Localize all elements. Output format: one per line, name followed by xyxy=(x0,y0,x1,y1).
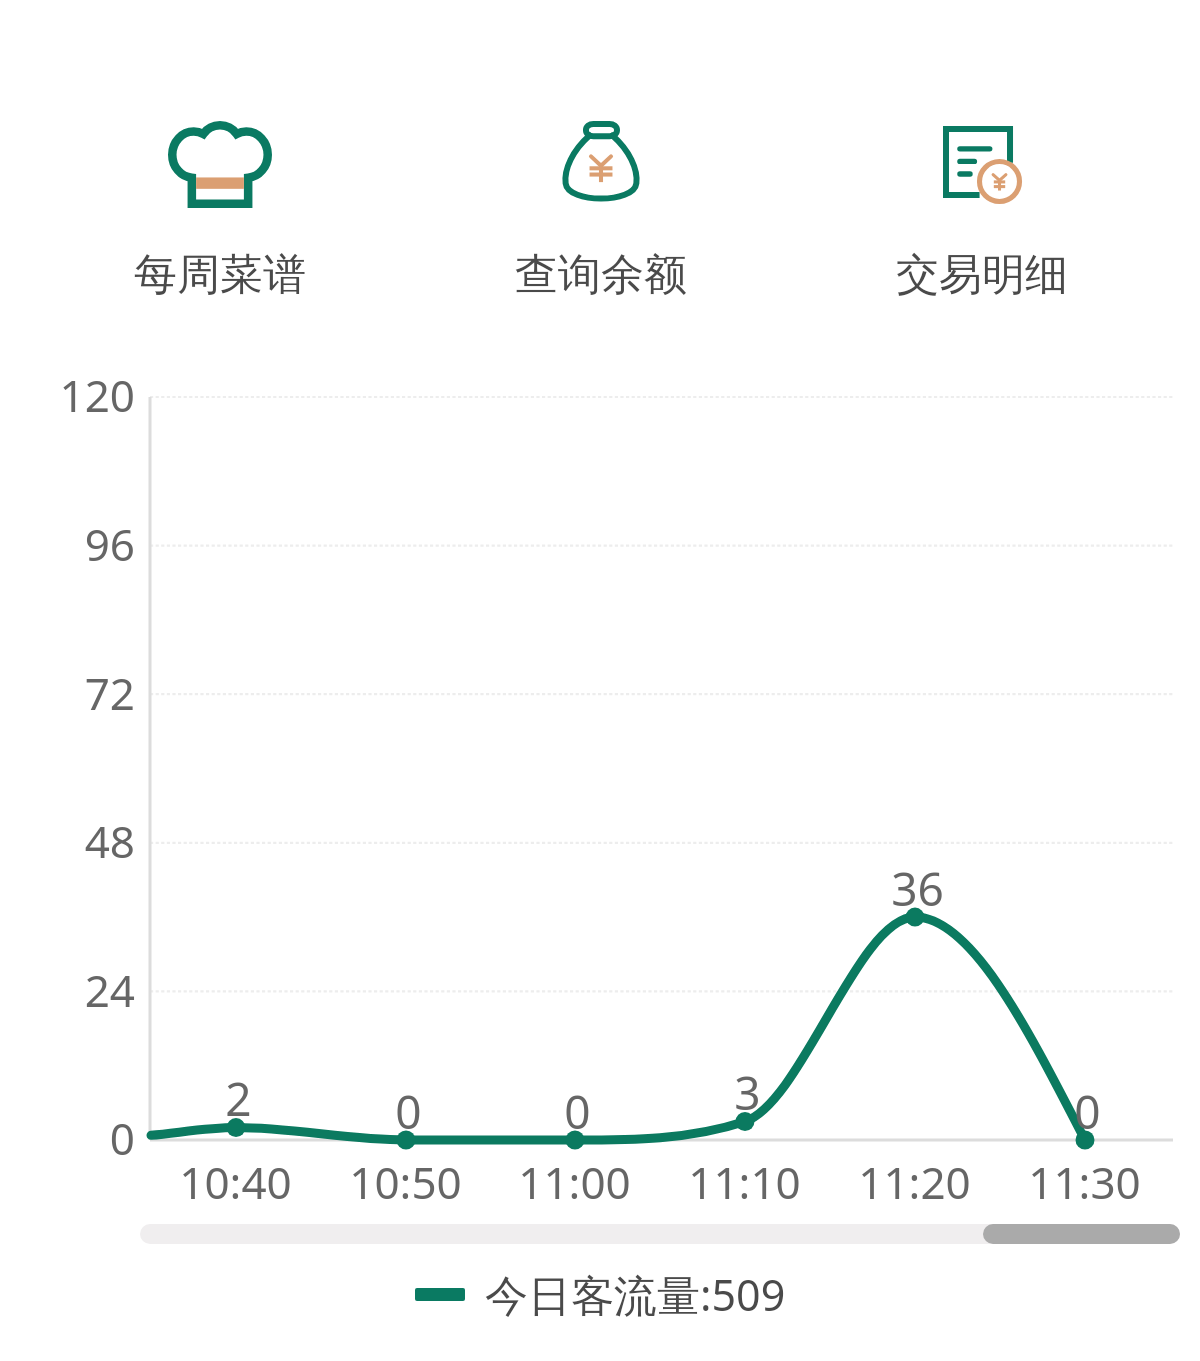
other: 每周菜谱 xyxy=(168,121,272,208)
staticText: 3 xyxy=(734,1061,761,1124)
staticText: 2 xyxy=(225,1067,252,1130)
staticText: 今日客流量:509 xyxy=(485,1265,786,1324)
staticText: 11:20 xyxy=(858,1152,971,1212)
staticText: 每周菜谱 xyxy=(134,248,306,302)
staticText: 0 xyxy=(564,1080,591,1143)
other: 查询余额 xyxy=(561,121,641,205)
staticText: 查询余额 xyxy=(515,248,687,302)
staticText: 96 xyxy=(84,514,135,574)
staticText: 48 xyxy=(84,811,135,871)
staticText: 11:00 xyxy=(518,1152,631,1212)
staticText: 10:40 xyxy=(179,1152,292,1212)
staticText: 36 xyxy=(891,857,944,920)
button[interactable]: 交易明细 xyxy=(842,126,1122,302)
button[interactable]: 查询余额 xyxy=(461,121,741,302)
staticText: 0 xyxy=(395,1080,422,1143)
button[interactable]: 每周菜谱 xyxy=(80,121,360,302)
staticText: 72 xyxy=(84,663,135,723)
other: 交易明细 xyxy=(943,126,1022,204)
staticText: 120 xyxy=(59,365,135,425)
staticText: 0 xyxy=(1074,1080,1101,1143)
staticText: 10:50 xyxy=(349,1152,462,1212)
staticText: 11:30 xyxy=(1028,1152,1141,1212)
staticText: 11:10 xyxy=(688,1152,801,1212)
staticText: 0 xyxy=(109,1108,135,1168)
staticText: 交易明细 xyxy=(896,248,1068,302)
staticText: 24 xyxy=(84,960,135,1020)
